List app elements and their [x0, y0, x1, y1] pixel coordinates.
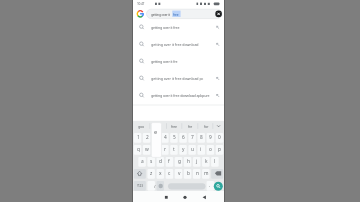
staticText: v	[178, 170, 181, 177]
button[interactable]	[168, 183, 205, 190]
staticText: g	[178, 158, 181, 165]
staticText: 2	[146, 134, 149, 141]
button[interactable]	[214, 182, 223, 191]
button[interactable]	[215, 10, 222, 17]
staticText: 1	[137, 134, 140, 141]
button[interactable]	[178, 192, 192, 201]
button[interactable]	[198, 192, 212, 201]
staticText: y	[182, 146, 185, 153]
staticText: z	[150, 170, 153, 177]
staticText: u	[191, 146, 194, 153]
staticText: f	[168, 158, 170, 165]
staticText: for	[204, 124, 209, 129]
staticText: 10:47	[137, 2, 145, 6]
button[interactable]	[147, 9, 222, 19]
staticText: w	[145, 146, 149, 153]
staticText: getting over it free download apkpure	[151, 93, 210, 98]
staticText: k	[205, 158, 208, 165]
staticText: 4	[164, 134, 167, 141]
staticText: ?123	[137, 184, 143, 188]
staticText: j	[196, 158, 198, 165]
staticText: fre	[188, 124, 193, 129]
staticText: a	[141, 158, 144, 165]
button[interactable]	[133, 70, 224, 87]
staticText: p	[218, 146, 221, 153]
staticText: 9	[209, 134, 212, 141]
staticText: 7	[191, 134, 194, 141]
staticText: m	[204, 170, 209, 177]
button[interactable]	[133, 53, 224, 70]
staticText: 0	[218, 134, 221, 141]
staticText: getting over it free download pc	[151, 76, 204, 81]
staticText: q	[137, 146, 140, 153]
staticText: getting over it free download	[151, 42, 199, 47]
staticText: n	[196, 170, 199, 177]
staticText: t	[173, 146, 175, 153]
button[interactable]	[133, 36, 224, 53]
button[interactable]	[158, 192, 172, 201]
staticText: 8	[200, 134, 203, 141]
staticText: getting over it free	[151, 25, 180, 30]
staticText: s	[150, 158, 153, 165]
staticText: free	[173, 12, 179, 16]
staticText: free	[171, 124, 177, 129]
staticText: e	[154, 128, 158, 136]
staticText: goo	[138, 124, 144, 129]
staticText: /	[154, 184, 156, 189]
staticText: l	[214, 158, 216, 165]
staticText: .	[209, 182, 211, 189]
staticText: h	[187, 158, 190, 165]
staticText: x	[159, 170, 162, 177]
staticText: b	[187, 170, 190, 177]
button[interactable]	[133, 87, 224, 104]
staticText: o	[209, 146, 212, 153]
staticText: 6	[182, 134, 185, 141]
staticText: r	[164, 146, 166, 153]
staticText: getting over it fre	[151, 59, 178, 64]
staticText: 5	[173, 134, 176, 141]
staticText: i	[200, 146, 202, 153]
button[interactable]	[133, 19, 224, 36]
staticText: c	[168, 170, 171, 177]
staticText: getting over it	[151, 12, 170, 16]
staticText: d	[159, 158, 162, 165]
